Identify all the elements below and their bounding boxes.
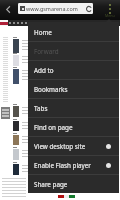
button[interactable]: Reload xyxy=(84,4,93,13)
staticText: Enable Flash player xyxy=(34,161,91,170)
button[interactable]: More options xyxy=(103,1,116,17)
staticText: Tabs xyxy=(34,104,48,113)
staticText: Share page xyxy=(34,180,68,189)
button[interactable]: Share page xyxy=(28,175,119,193)
staticText: Home xyxy=(34,28,52,37)
button[interactable]: Enable Flash player xyxy=(28,156,119,174)
button[interactable]: Tabs xyxy=(28,99,119,117)
button[interactable]: Home xyxy=(28,23,119,41)
staticText: Menu xyxy=(105,13,115,18)
button[interactable]: Back xyxy=(0,1,16,17)
staticText: Add to xyxy=(34,66,54,75)
button[interactable]: www.gsmarena.com xyxy=(18,3,93,14)
button[interactable]: Find on page xyxy=(28,118,119,136)
staticText: Forward xyxy=(34,47,59,56)
button[interactable]: Add to xyxy=(28,61,119,79)
staticText: Bookmarks xyxy=(34,85,68,94)
button[interactable]: View desktop site xyxy=(28,137,119,155)
button[interactable]: Bookmarks xyxy=(28,80,119,98)
button[interactable]: Forward xyxy=(28,42,119,60)
staticText: Find on page xyxy=(34,123,73,132)
staticText: View desktop site xyxy=(34,142,86,151)
staticText: www.gsmarena.com xyxy=(26,5,78,12)
